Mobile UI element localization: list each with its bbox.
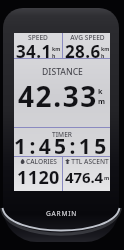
staticText: 42.33: [18, 77, 98, 115]
button[interactable]: SPEED: [14, 33, 62, 58]
staticText: AVG SPEED: [70, 33, 105, 42]
staticText: 28.6: [65, 40, 101, 63]
button[interactable]: AVG SPEED: [63, 33, 111, 58]
button[interactable]: DISTANCE: [14, 59, 110, 127]
staticText: DISTANCE: [42, 66, 83, 78]
staticText: TIMER: [52, 130, 72, 139]
button[interactable]: TTL ASCENT: [63, 157, 111, 191]
staticText: CALORIES: [26, 157, 57, 166]
button[interactable]: TIMER: [14, 128, 110, 156]
staticText: 1:45:15: [14, 132, 110, 160]
staticText: h: [101, 52, 105, 59]
staticText: TTL ASCENT: [71, 157, 109, 166]
staticText: 476.4: [65, 167, 104, 187]
staticText: km: [52, 45, 61, 52]
staticText: m: [104, 174, 110, 181]
staticText: 1120: [17, 165, 60, 190]
staticText: h: [52, 52, 56, 59]
staticText: m: [98, 96, 106, 106]
staticText: km: [101, 45, 110, 52]
staticText: k: [98, 86, 103, 96]
button[interactable]: CALORIES: [14, 157, 62, 191]
staticText: SPEED: [28, 33, 48, 42]
staticText: 34.1: [16, 40, 52, 63]
staticText: GARMIN: [46, 209, 78, 218]
